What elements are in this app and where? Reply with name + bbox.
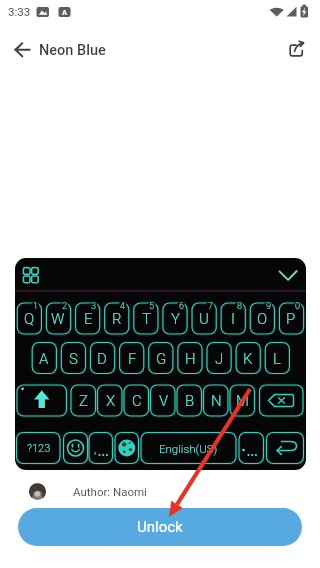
staticText: 3 [91, 301, 96, 312]
staticText: C [132, 392, 142, 410]
staticText: J [215, 350, 224, 368]
staticText: B [185, 392, 195, 410]
staticText: 4 [120, 301, 125, 312]
staticText: N [211, 392, 222, 410]
staticText: P [286, 310, 296, 328]
staticText: Z [79, 392, 88, 410]
button[interactable] [8, 38, 36, 62]
button[interactable] [284, 36, 312, 62]
staticText: I [231, 310, 235, 328]
button[interactable]: Unlock [18, 508, 302, 546]
staticText: K [243, 350, 253, 368]
staticText: 5 [149, 301, 154, 312]
staticText: 7 [208, 301, 213, 312]
staticText: T [142, 310, 151, 328]
staticText: L [273, 350, 281, 368]
staticText: A [39, 350, 49, 368]
staticText: 9 [266, 301, 271, 312]
staticText: Author: Naomi [73, 485, 147, 498]
staticText: M [236, 392, 249, 410]
staticText: U [199, 310, 209, 328]
staticText: V [159, 392, 169, 410]
staticText: R [112, 310, 122, 328]
button[interactable]: Q [15, 258, 306, 470]
staticText: O [257, 310, 268, 328]
staticText: Q [24, 310, 35, 328]
staticText: S [69, 350, 78, 368]
staticText: 8 [237, 301, 242, 312]
staticText: ?123 [27, 442, 51, 455]
staticText: X [106, 392, 116, 410]
staticText: H [185, 350, 196, 368]
staticText: W [51, 310, 65, 328]
staticText: Unlock [137, 518, 183, 536]
staticText: D [97, 350, 107, 368]
staticText: 3:33 [8, 5, 31, 18]
staticText: Neon Blue [39, 42, 106, 59]
staticText: E [84, 310, 93, 328]
staticText: F [128, 350, 137, 368]
staticText: 0 [295, 301, 300, 312]
staticText: A [62, 8, 68, 17]
staticText: 1 [33, 301, 38, 312]
staticText: 6 [179, 301, 184, 312]
staticText: , [94, 442, 97, 456]
staticText: 2 [62, 301, 67, 312]
staticText: G [156, 350, 167, 368]
staticText: Y [171, 310, 180, 328]
staticText: English(US) [159, 442, 218, 455]
